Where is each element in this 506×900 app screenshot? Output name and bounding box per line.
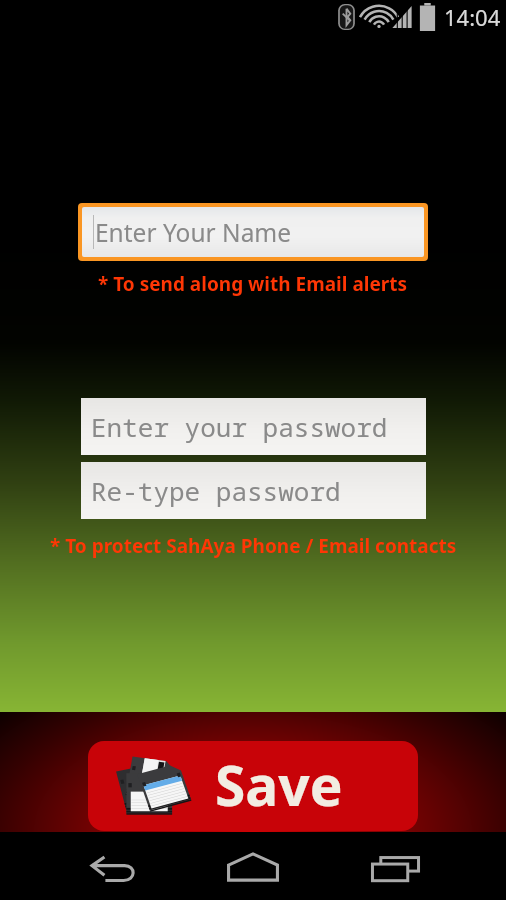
- button[interactable]: Enter Your Name: [82, 207, 424, 257]
- button[interactable]: Re-type password: [81, 462, 426, 519]
- staticText: Enter Your Name: [95, 216, 292, 249]
- staticText: Re-type password: [91, 473, 341, 508]
- button[interactable]: Home: [218, 833, 288, 900]
- button[interactable]: Recent apps: [360, 835, 430, 900]
- staticText: Save: [215, 747, 343, 822]
- staticText: Enter your password: [91, 409, 388, 444]
- button[interactable]: Save: [88, 741, 418, 831]
- staticText: * To send along with Email alerts: [98, 271, 408, 297]
- staticText: 14:04: [444, 2, 501, 32]
- button[interactable]: Enter your password: [81, 398, 426, 455]
- staticText: * To protect SahAya Phone / Email contac…: [50, 533, 457, 559]
- button[interactable]: Back: [80, 835, 150, 900]
